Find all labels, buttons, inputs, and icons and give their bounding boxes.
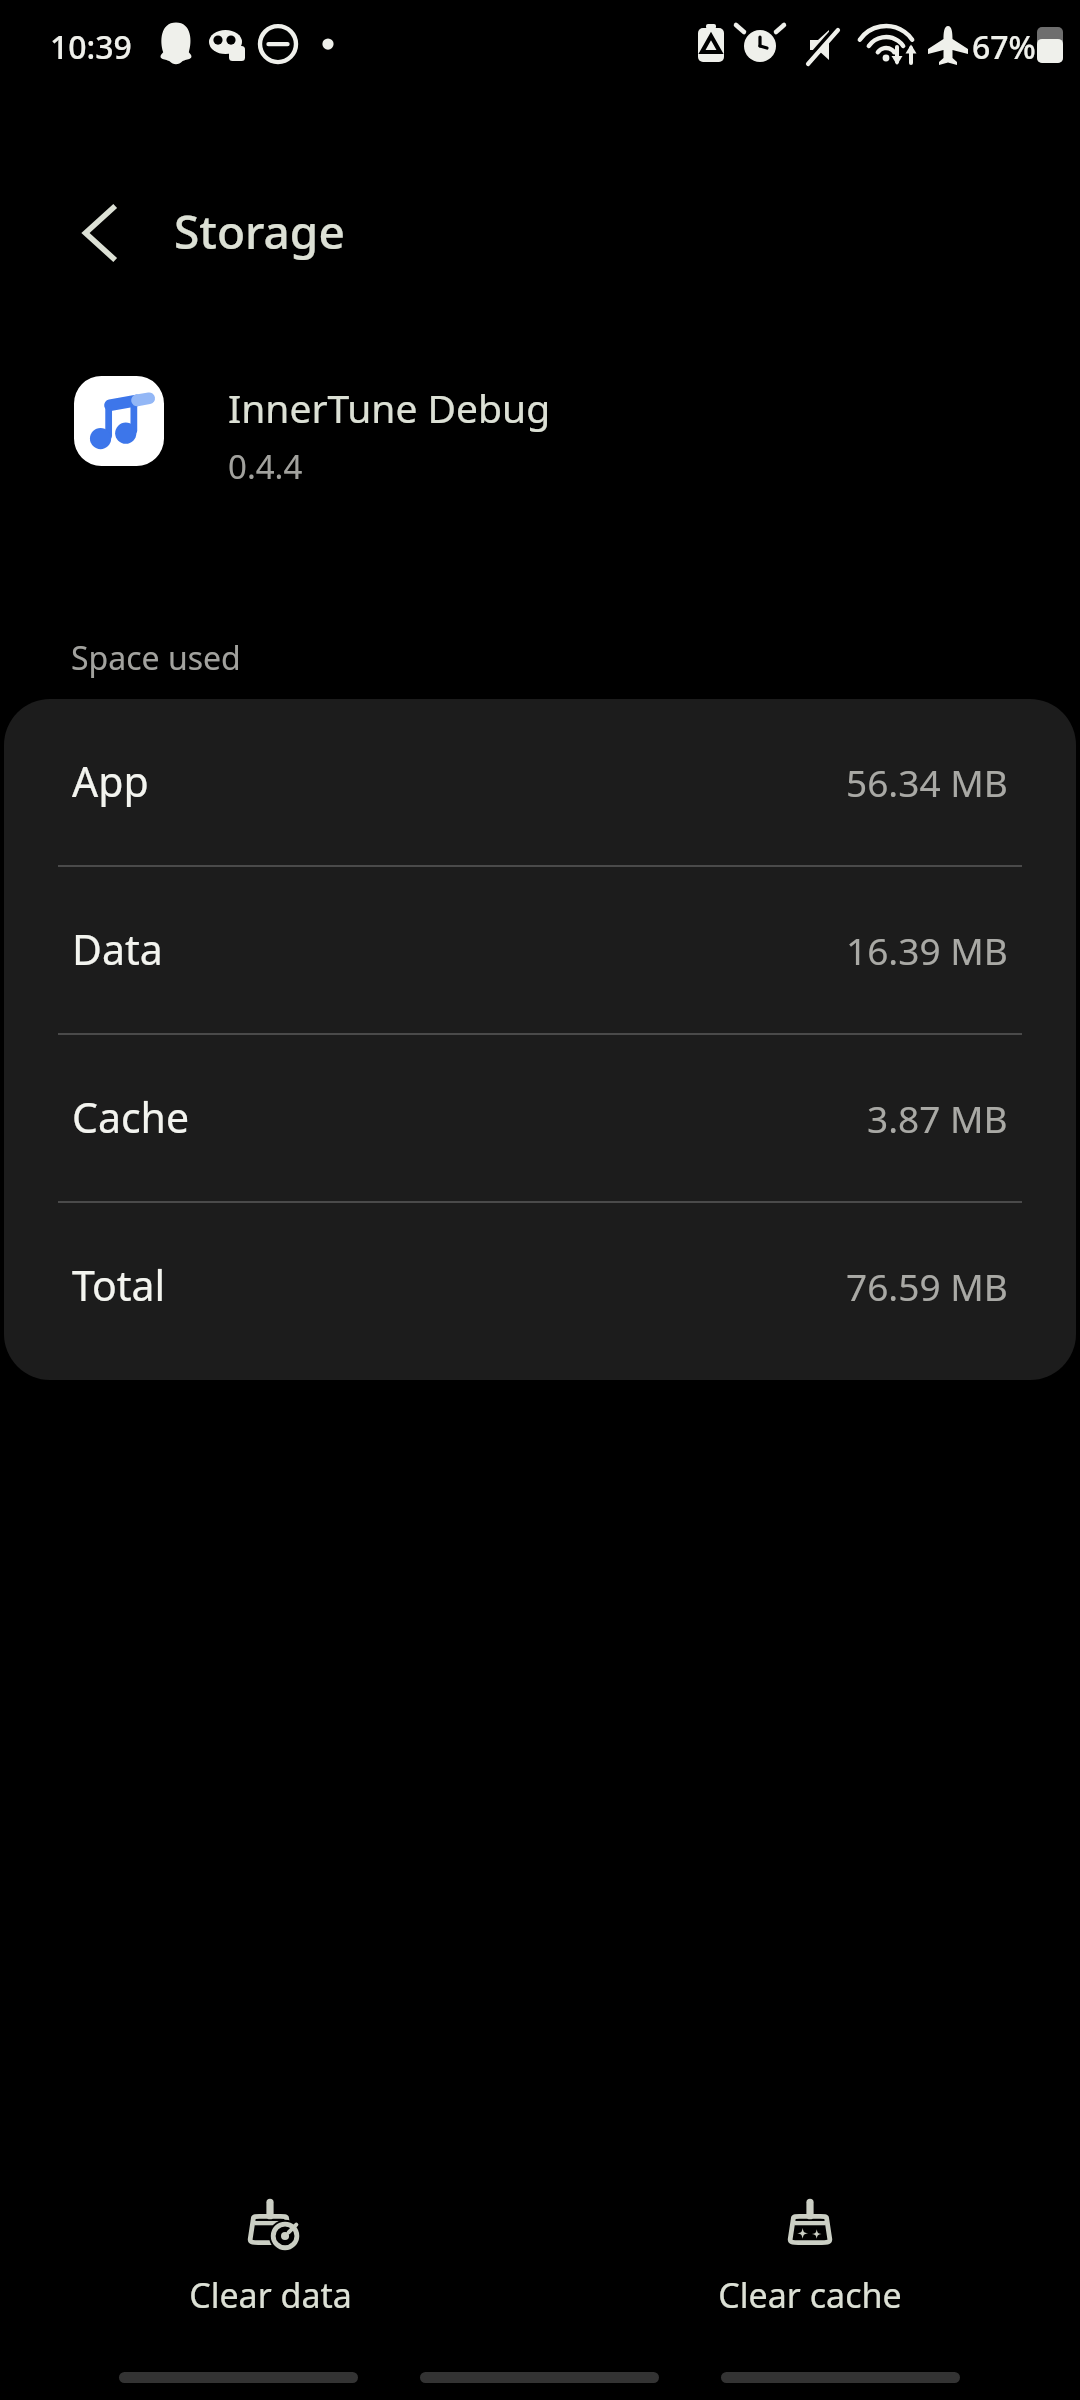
staticText: 56.34 MB: [846, 757, 1008, 807]
staticText: Clear data: [189, 2272, 352, 2318]
staticText: 16.39 MB: [846, 925, 1008, 975]
staticText: 76.59 MB: [846, 1261, 1008, 1311]
staticText: Clear cache: [718, 2272, 902, 2318]
staticText: InnerTune Debug: [228, 381, 551, 434]
staticText: Space used: [71, 636, 241, 680]
staticText: 67%: [972, 25, 1036, 69]
staticText: 10:39: [50, 25, 132, 69]
staticText: Total: [72, 1257, 166, 1313]
button[interactable]: Clear data: [0, 2180, 540, 2318]
staticText: App: [72, 753, 149, 809]
staticText: 3.87 MB: [867, 1093, 1008, 1143]
button[interactable]: Back: [48, 185, 143, 280]
button[interactable]: Cache: [4, 1035, 1076, 1203]
button[interactable]: Data: [4, 867, 1076, 1035]
staticText: 0.4.4: [228, 444, 303, 489]
staticText: Cache: [72, 1089, 190, 1145]
button[interactable]: App: [4, 699, 1076, 867]
staticText: Storage: [174, 200, 345, 263]
staticText: Data: [72, 921, 163, 977]
button[interactable]: Clear cache: [540, 2180, 1080, 2318]
button[interactable]: Total: [4, 1203, 1076, 1371]
